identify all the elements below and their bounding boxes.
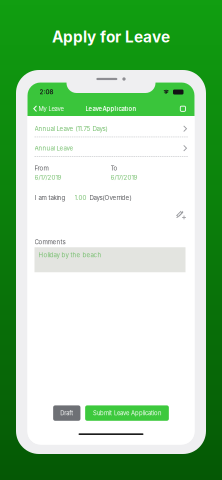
staticText: To	[110, 164, 117, 172]
button[interactable]: From	[34, 164, 110, 181]
staticText: Comments	[34, 238, 65, 246]
button[interactable]: To	[110, 164, 187, 181]
staticText: Holiday by the beach	[38, 251, 101, 259]
staticText: 2:08	[39, 88, 53, 96]
button[interactable]: Submit Leave Application	[85, 405, 169, 421]
staticText: 1.00	[74, 194, 86, 201]
staticText: Leave Application	[85, 105, 136, 112]
staticText: My Leave	[39, 105, 64, 112]
staticText: From	[34, 164, 48, 172]
staticText: Submit Leave Application	[93, 410, 161, 417]
staticText: Annual Leave	[34, 145, 73, 152]
staticText: Annual Leave (11.75 Days)	[34, 125, 107, 132]
button[interactable]: Add attachment	[175, 209, 187, 220]
button[interactable]: More options	[176, 102, 189, 115]
staticText: I am taking	[34, 194, 65, 201]
staticText: Draft	[60, 410, 73, 417]
button[interactable]: Annual Leave (11.75 Days)	[34, 116, 187, 137]
staticText: Apply for Leave	[52, 28, 170, 46]
button[interactable]: My Leave	[27, 103, 68, 114]
button[interactable]: Draft	[53, 405, 80, 421]
staticText: Days(Override)	[89, 194, 131, 201]
staticText: 6/17/2019	[110, 174, 137, 181]
button[interactable]: Annual Leave	[34, 137, 187, 157]
staticText: 6/17/2019	[34, 174, 61, 181]
